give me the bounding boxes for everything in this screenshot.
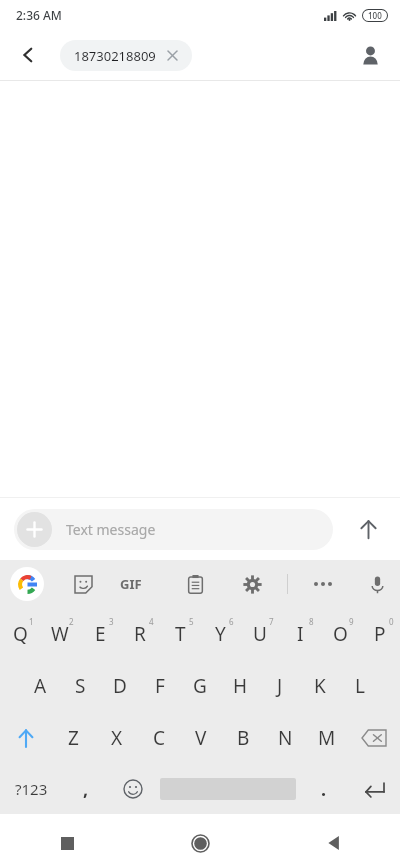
staticText: B: [237, 725, 250, 751]
button[interactable]: H: [220, 660, 260, 712]
button[interactable]: Backspace: [348, 712, 400, 764]
button[interactable]: Enter: [348, 764, 400, 814]
staticText: 2: [69, 616, 74, 627]
staticText: R: [134, 621, 146, 647]
staticText: O: [333, 621, 348, 647]
staticText: Z: [68, 725, 79, 751]
button[interactable]: P: [360, 608, 400, 660]
button[interactable]: J: [260, 660, 300, 712]
staticText: E: [95, 621, 106, 647]
button[interactable]: GIF: [120, 575, 142, 593]
button[interactable]: L: [340, 660, 380, 712]
button[interactable]: Back: [8, 35, 48, 75]
button[interactable]: K: [300, 660, 340, 712]
staticText: V: [195, 725, 207, 751]
button[interactable]: E: [80, 608, 120, 660]
staticText: ,: [83, 777, 89, 802]
staticText: .: [321, 777, 327, 802]
staticText: 6: [229, 616, 234, 627]
staticText: L: [355, 673, 365, 699]
staticText: 4: [149, 616, 154, 627]
staticText: Text message: [66, 520, 156, 539]
button[interactable]: X: [95, 712, 138, 764]
button[interactable]: Clipboard: [178, 567, 212, 601]
staticText: T: [175, 621, 186, 647]
button[interactable]: R: [120, 608, 160, 660]
staticText: X: [111, 725, 123, 751]
staticText: 9: [349, 616, 354, 627]
staticText: 18730218809: [74, 47, 156, 65]
staticText: I: [297, 621, 304, 647]
button[interactable]: ?123: [0, 764, 62, 814]
button[interactable]: Shift: [0, 712, 52, 764]
button[interactable]: S: [60, 660, 100, 712]
staticText: M: [318, 725, 336, 751]
button[interactable]: Z: [52, 712, 95, 764]
staticText: D: [113, 673, 127, 699]
button[interactable]: I: [280, 608, 320, 660]
staticText: W: [51, 621, 69, 647]
button[interactable]: Send: [346, 507, 390, 551]
staticText: 3: [109, 616, 114, 627]
button[interactable]: Home: [134, 820, 267, 866]
staticText: 1: [29, 616, 34, 627]
staticText: J: [277, 673, 283, 699]
button[interactable]: U: [240, 608, 280, 660]
button[interactable]: Comma: [62, 764, 110, 814]
staticText: Q: [13, 621, 28, 647]
button[interactable]: D: [100, 660, 140, 712]
button[interactable]: M: [306, 712, 348, 764]
button[interactable]: Voice input: [360, 567, 394, 601]
staticText: A: [34, 673, 47, 699]
button[interactable]: N: [264, 712, 306, 764]
staticText: 0: [389, 616, 394, 627]
staticText: P: [374, 621, 386, 647]
staticText: 100: [368, 10, 382, 21]
button[interactable]: A: [20, 660, 60, 712]
staticText: F: [155, 673, 165, 699]
staticText: N: [278, 725, 293, 751]
button[interactable]: Google: [10, 567, 44, 601]
button[interactable]: Y: [200, 608, 240, 660]
button[interactable]: T: [160, 608, 200, 660]
button[interactable]: V: [180, 712, 222, 764]
button[interactable]: Q: [0, 608, 40, 660]
staticText: G: [193, 673, 207, 699]
button[interactable]: Contact details: [350, 35, 390, 75]
button[interactable]: 18730218809: [60, 40, 192, 71]
button[interactable]: O: [320, 608, 360, 660]
staticText: K: [314, 673, 326, 699]
button[interactable]: F: [140, 660, 180, 712]
button[interactable]: Recents: [0, 820, 134, 866]
button[interactable]: Back: [267, 820, 400, 866]
button[interactable]: B: [222, 712, 264, 764]
staticText: S: [75, 673, 86, 699]
button[interactable]: W: [40, 608, 80, 660]
button[interactable]: Settings: [235, 567, 269, 601]
button[interactable]: Period: [300, 764, 348, 814]
button[interactable]: C: [138, 712, 180, 764]
button[interactable]: More options: [306, 567, 340, 601]
staticText: C: [153, 725, 166, 751]
staticText: 8: [309, 616, 314, 627]
staticText: Y: [215, 621, 226, 647]
button[interactable]: Attach: [17, 512, 52, 547]
button[interactable]: Attach: [14, 509, 333, 550]
staticText: 7: [269, 616, 274, 627]
button[interactable]: Emoji: [110, 764, 156, 814]
button[interactable]: G: [180, 660, 220, 712]
staticText: U: [253, 621, 267, 647]
staticText: 2:36 AM: [16, 7, 62, 23]
staticText: ?123: [15, 779, 48, 799]
button[interactable]: Stickers: [66, 567, 100, 601]
staticText: 5: [189, 616, 194, 627]
staticText: H: [233, 673, 248, 699]
